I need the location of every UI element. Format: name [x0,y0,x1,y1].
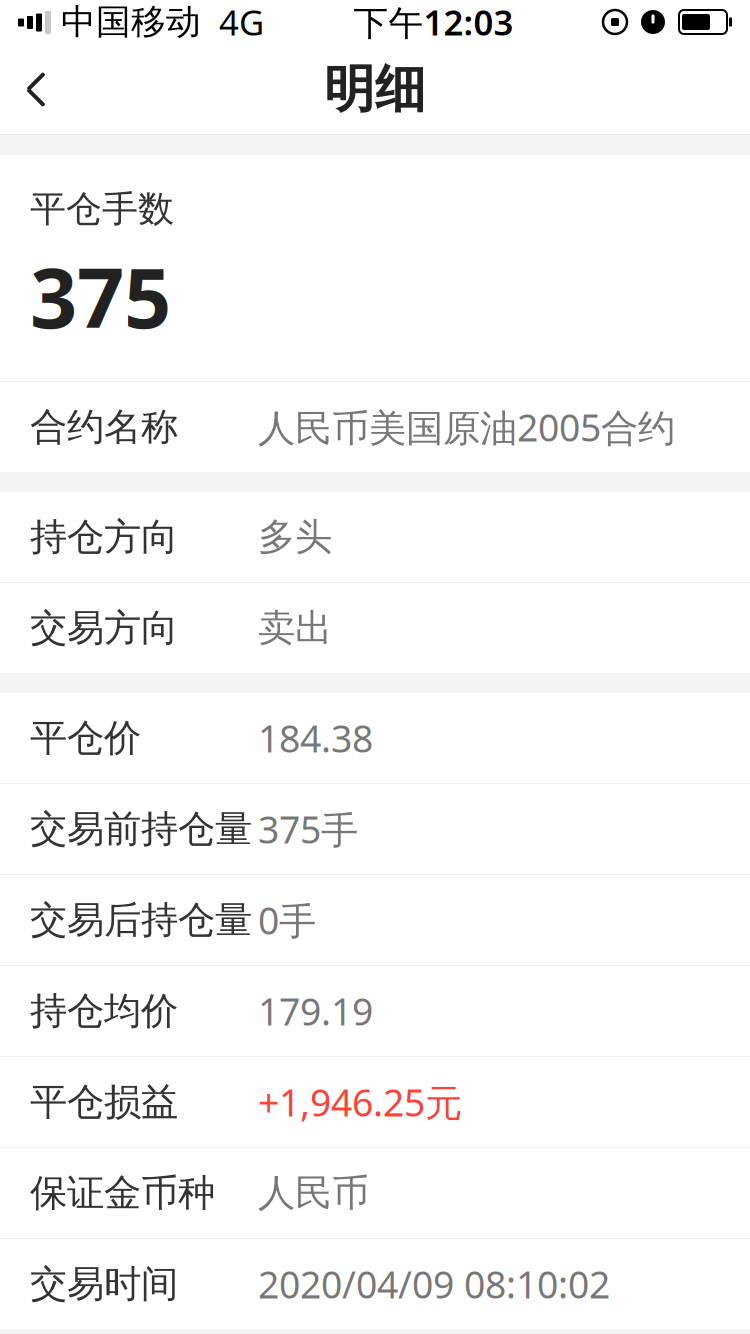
staticText: 0手 [258,895,316,945]
staticText: 184.38 [258,713,373,763]
button[interactable]: 交易前持仓量 [0,784,750,874]
staticText: 中国移动 [61,1,201,43]
staticText: 交易方向 [30,605,178,651]
staticText: 人民币美国原油2005合约 [258,402,675,452]
staticText: 明细 [324,58,426,121]
staticText: 合约名称 [30,404,178,450]
staticText: 179.19 [258,986,373,1036]
staticText: 保证金币种 [30,1170,215,1216]
staticText: 平仓损益 [30,1079,178,1125]
button[interactable]: 交易时间 [0,1239,750,1329]
button[interactable]: 保证金币种 [0,1148,750,1238]
staticText: 4G [219,0,264,45]
staticText: 平仓手数 [30,187,174,231]
staticText: 交易前持仓量 [30,806,252,852]
staticText: 下午12:03 [353,0,513,45]
staticText: 卖出 [258,605,332,651]
staticText: +1,946.25元 [258,1077,462,1127]
staticText: 多头 [258,514,332,560]
button[interactable]: 平仓损益 [0,1057,750,1147]
staticText: 持仓均价 [30,988,178,1034]
button[interactable]: 合约名称 [0,382,750,472]
staticText: 持仓方向 [30,514,178,560]
staticText: 人民币 [258,1170,369,1216]
button[interactable]: 平仓价 [0,693,750,783]
button[interactable]: 返回 [0,44,72,135]
staticText: 交易后持仓量 [30,897,252,943]
staticText: 375手 [258,804,358,854]
button[interactable]: 持仓方向 [0,492,750,582]
staticText: 375 [30,241,171,351]
button[interactable]: 交易后持仓量 [0,875,750,965]
staticText: 交易时间 [30,1261,178,1307]
button[interactable]: 持仓均价 [0,966,750,1056]
staticText: 平仓价 [30,715,141,761]
button[interactable]: 交易方向 [0,583,750,673]
staticText: 2020/04/09 08:10:02 [258,1259,610,1309]
